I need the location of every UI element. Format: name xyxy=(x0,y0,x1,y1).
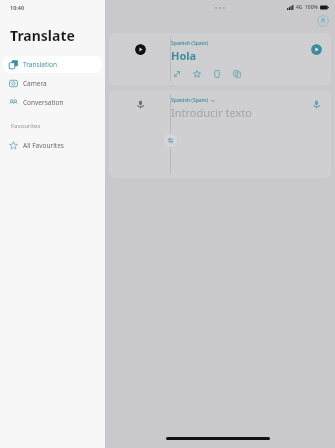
button[interactable]: Speak translation xyxy=(311,99,322,110)
staticText: Favourites xyxy=(11,122,41,130)
staticText: Conversation xyxy=(23,98,64,107)
staticText: 4G xyxy=(296,4,303,11)
button[interactable]: Play translation xyxy=(311,44,322,55)
staticText: Spanish (Spain) xyxy=(171,97,209,104)
button[interactable]: Favourite xyxy=(191,68,202,79)
staticText: Introducir texto xyxy=(171,105,252,120)
staticText: Camera xyxy=(23,79,47,88)
button[interactable]: Expand xyxy=(171,68,182,79)
staticText: 10:40 xyxy=(10,4,25,11)
staticText: Spanish (Spain) xyxy=(171,40,209,47)
button[interactable]: Translation xyxy=(3,56,102,73)
staticText: 100% xyxy=(305,4,318,11)
button[interactable]: Full screen xyxy=(211,68,222,79)
button[interactable]: Account xyxy=(317,15,329,27)
staticText: Hola xyxy=(171,48,197,63)
button[interactable]: Play source xyxy=(135,44,146,55)
button[interactable]: All Favourites xyxy=(3,137,102,154)
staticText: Translate xyxy=(10,26,75,45)
button[interactable]: Swap languages xyxy=(164,134,177,147)
staticText: Translation xyxy=(23,60,57,69)
button[interactable]: Camera xyxy=(3,75,102,92)
button[interactable]: Speak source xyxy=(135,99,146,110)
button[interactable]: Conversation xyxy=(3,94,102,111)
staticText: All Favourites xyxy=(23,141,64,150)
button[interactable]: Copy xyxy=(231,68,242,79)
